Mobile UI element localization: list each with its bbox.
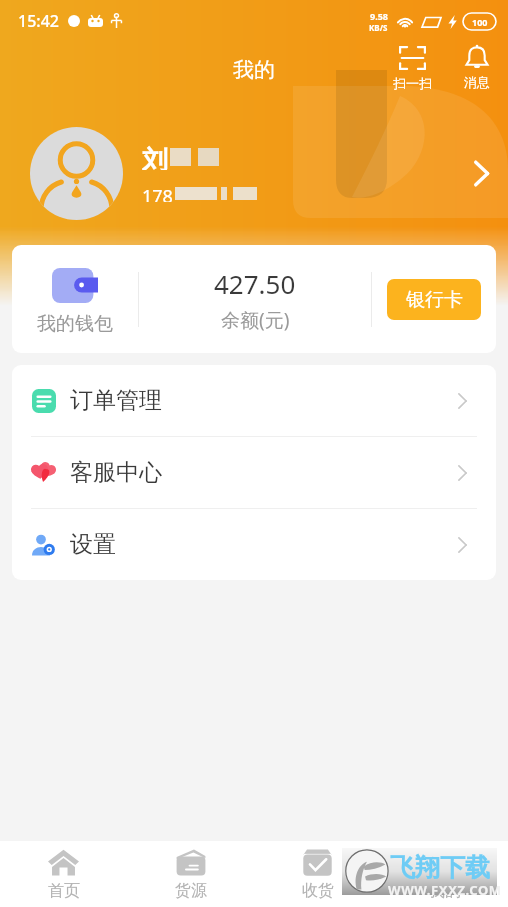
staticText: 扫一扫 — [393, 75, 432, 91]
staticText: 设置 — [70, 530, 116, 559]
staticText: 15:42 — [18, 10, 59, 32]
staticText: 余额(元) — [221, 307, 290, 333]
staticText: 178 — [142, 184, 173, 202]
staticText: 100 — [472, 16, 488, 28]
button[interactable]: 首页 — [0, 841, 127, 907]
staticText: 消息 — [464, 74, 490, 90]
staticText: 订单管理 — [70, 386, 162, 415]
button[interactable]: 设置 — [12, 509, 496, 580]
button[interactable]: 我的钱包 — [12, 265, 138, 333]
staticText: 刘 — [142, 144, 168, 170]
staticText: 9.58 — [370, 10, 388, 22]
staticText: 客服中心 — [70, 458, 162, 487]
button[interactable]: 客服中心 — [12, 437, 496, 508]
button[interactable]: 消息 — [449, 42, 505, 94]
staticText: WWW.FXXZ.COM — [388, 881, 502, 899]
button[interactable]: 刘 — [0, 126, 508, 220]
button[interactable]: 货源 — [127, 841, 254, 907]
button[interactable]: 收货 — [254, 841, 381, 907]
staticText: 银行卡 — [406, 288, 463, 312]
staticText: 我的 — [429, 881, 461, 901]
button[interactable]: 扫一扫 — [384, 42, 440, 95]
button[interactable]: 银行卡 — [387, 279, 481, 320]
staticText: 427.50 — [214, 266, 296, 301]
staticText: 收货 — [302, 881, 334, 901]
staticText: 货源 — [175, 881, 207, 901]
staticText: 我的 — [233, 57, 275, 83]
button[interactable]: 订单管理 — [12, 365, 496, 436]
staticText: 首页 — [48, 881, 80, 901]
staticText: 我的钱包 — [37, 312, 113, 336]
staticText: KB/S — [369, 22, 388, 33]
button[interactable]: 我的 — [381, 841, 508, 907]
staticText: 飞翔下载 — [390, 852, 490, 883]
